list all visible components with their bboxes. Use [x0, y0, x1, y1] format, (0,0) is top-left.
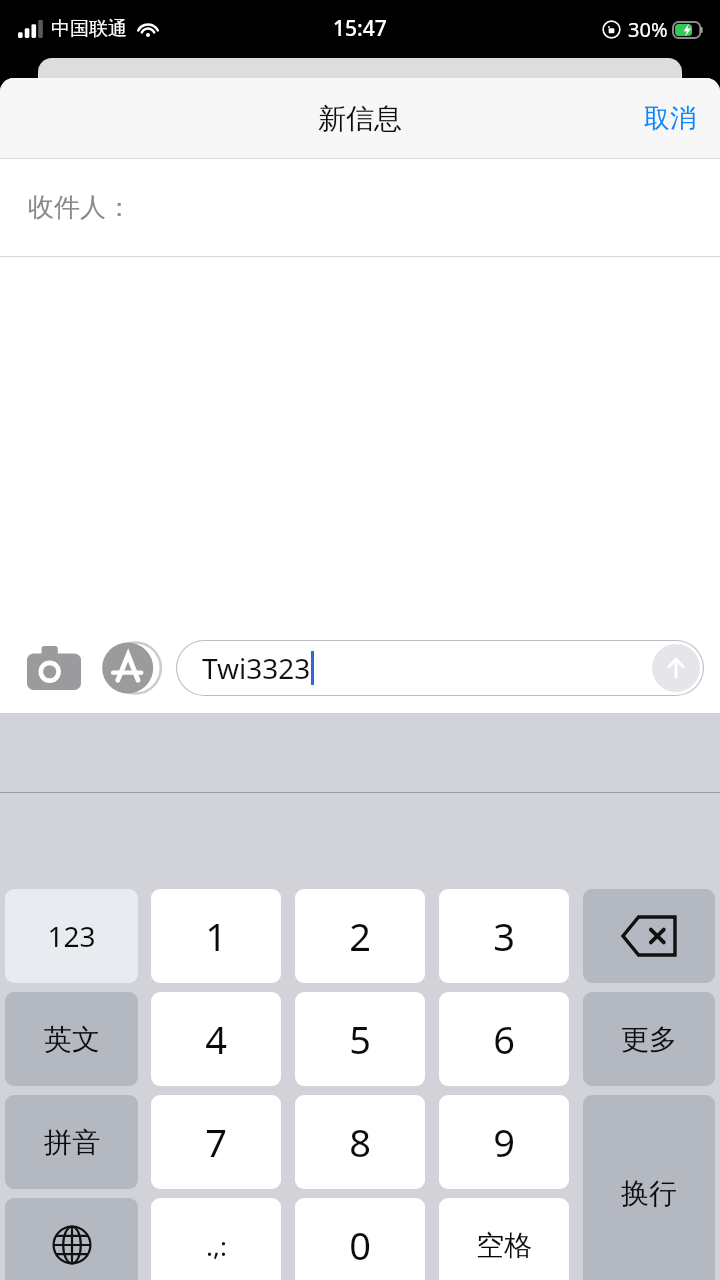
- staticText: 9: [493, 1116, 515, 1168]
- button[interactable]: 9: [439, 1095, 569, 1189]
- button[interactable]: 拼音: [5, 1095, 138, 1189]
- button[interactable]: 123: [5, 889, 138, 983]
- button[interactable]: 3: [439, 889, 569, 983]
- staticText: 拼音: [44, 1125, 100, 1160]
- staticText: Twi3323: [202, 649, 311, 687]
- staticText: 更多: [621, 1022, 677, 1057]
- button[interactable]: Send: [652, 644, 700, 692]
- staticText: 新信息: [318, 101, 402, 136]
- staticText: 收件人：: [28, 191, 132, 224]
- button[interactable]: .,:: [151, 1198, 281, 1280]
- button[interactable]: 收件人：: [0, 159, 720, 256]
- button[interactable]: 2: [295, 889, 425, 983]
- button[interactable]: App Store: [98, 636, 162, 700]
- button[interactable]: 0: [295, 1198, 425, 1280]
- staticText: 5: [349, 1013, 371, 1065]
- button[interactable]: Camera: [22, 636, 86, 700]
- staticText: 换行: [621, 1176, 677, 1211]
- staticText: 英文: [44, 1022, 100, 1057]
- staticText: .,:: [206, 1228, 227, 1263]
- staticText: 3: [493, 910, 515, 962]
- staticText: 30%: [628, 16, 668, 43]
- button[interactable]: 6: [439, 992, 569, 1086]
- button[interactable]: Delete: [583, 889, 715, 983]
- staticText: 123: [47, 917, 96, 955]
- staticText: 中国联通: [51, 17, 127, 41]
- button[interactable]: 1: [151, 889, 281, 983]
- staticText: 8: [349, 1116, 371, 1168]
- staticText: 0: [349, 1219, 371, 1271]
- staticText: 取消: [644, 102, 696, 135]
- button[interactable]: 7: [151, 1095, 281, 1189]
- button[interactable]: 取消: [620, 88, 720, 149]
- staticText: 4: [205, 1013, 227, 1065]
- button[interactable]: Switch keyboard: [5, 1198, 138, 1280]
- button[interactable]: 更多: [583, 992, 715, 1086]
- button[interactable]: 英文: [5, 992, 138, 1086]
- staticText: 1: [205, 910, 227, 962]
- button[interactable]: 5: [295, 992, 425, 1086]
- button[interactable]: 8: [295, 1095, 425, 1189]
- staticText: 空格: [476, 1228, 532, 1263]
- button[interactable]: 换行: [583, 1095, 715, 1280]
- button[interactable]: 空格: [439, 1198, 569, 1280]
- staticText: 2: [349, 910, 371, 962]
- staticText: 6: [493, 1013, 515, 1065]
- button[interactable]: Twi3323: [176, 640, 704, 696]
- staticText: 7: [205, 1116, 227, 1168]
- staticText: 15:47: [333, 14, 387, 43]
- button[interactable]: 4: [151, 992, 281, 1086]
